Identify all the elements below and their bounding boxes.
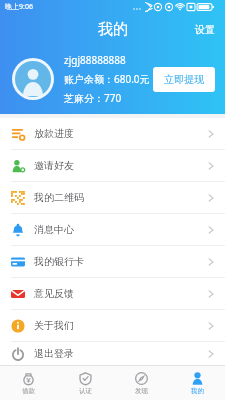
button[interactable]: 发现	[113, 366, 169, 400]
button[interactable]: 消息中心	[0, 214, 225, 245]
staticText: 我的银行卡	[34, 255, 208, 268]
staticText: 发现	[135, 387, 148, 395]
button[interactable]: 借款	[0, 366, 57, 400]
button[interactable]: 我的银行卡	[0, 246, 225, 277]
staticText: 意见反馈	[34, 287, 208, 300]
staticText: 邀请好友	[34, 159, 208, 172]
staticText: 关于我们	[34, 319, 208, 332]
button[interactable]: 放款进度	[0, 118, 225, 149]
button[interactable]: 我的二维码	[0, 182, 225, 213]
button[interactable]: 意见反馈	[0, 278, 225, 309]
staticText: 芝麻分：770	[64, 91, 122, 105]
staticText: 晚上9:06	[5, 2, 33, 12]
staticText: 认证	[79, 387, 92, 395]
staticText: 退出登录	[34, 347, 208, 360]
staticText: 我的	[98, 20, 128, 39]
staticText: 账户余额：680.0元	[64, 72, 150, 86]
staticText: 设置	[195, 23, 215, 36]
staticText: 立即提现	[164, 73, 204, 86]
button[interactable]: 退出登录	[0, 342, 225, 365]
button[interactable]: 设置	[185, 17, 225, 42]
button[interactable]: 认证	[57, 366, 113, 400]
button[interactable]: 我的	[169, 366, 225, 400]
staticText: 我的	[191, 387, 204, 395]
button[interactable]: 立即提现	[153, 67, 215, 92]
staticText: 我的二维码	[34, 191, 208, 204]
staticText: zjgj88888888	[64, 53, 126, 67]
staticText: 借款	[22, 387, 35, 395]
button[interactable]: 关于我们	[0, 310, 225, 341]
staticText: 消息中心	[34, 223, 208, 236]
button[interactable]: 邀请好友	[0, 150, 225, 181]
staticText: 放款进度	[34, 127, 208, 140]
